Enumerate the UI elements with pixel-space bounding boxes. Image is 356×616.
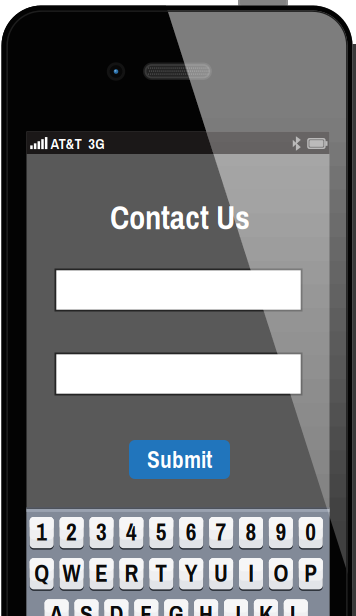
staticText: T [155, 557, 167, 589]
button[interactable]: T [149, 558, 173, 591]
staticText: I [248, 557, 253, 589]
button[interactable]: Q [30, 558, 54, 591]
button[interactable]: U [209, 558, 233, 591]
staticText: P [304, 557, 317, 589]
staticText: U [214, 557, 228, 589]
staticText: Q [34, 557, 49, 589]
staticText: G [169, 599, 184, 616]
button[interactable]: 8 [239, 517, 263, 550]
button[interactable]: I [239, 558, 263, 591]
button[interactable]: Submit [129, 440, 230, 479]
button[interactable]: 9 [269, 517, 293, 550]
staticText: O [273, 557, 288, 589]
button[interactable]: 7 [209, 517, 233, 550]
button[interactable]: 6 [179, 517, 203, 550]
staticText: K [259, 599, 273, 616]
staticText: R [124, 557, 138, 589]
staticText: 8 [245, 516, 256, 548]
staticText: 5 [156, 516, 167, 548]
staticText: Contact Us [110, 195, 250, 239]
staticText: 4 [126, 516, 137, 548]
staticText: S [80, 599, 93, 616]
button[interactable]: O [269, 558, 293, 591]
staticText: E [95, 557, 108, 589]
button[interactable]: W [60, 558, 84, 591]
button[interactable]: 4 [119, 517, 143, 550]
staticText: Y [185, 557, 198, 589]
button[interactable]: H [194, 599, 218, 616]
staticText: 9 [275, 516, 286, 548]
button[interactable]: D [104, 599, 128, 616]
staticText: 3 [96, 516, 107, 548]
button[interactable]: 0 [299, 517, 323, 550]
button[interactable]: K [254, 599, 278, 616]
button[interactable]: G [164, 599, 188, 616]
button[interactable]: A [45, 599, 69, 616]
button[interactable]: 1 [30, 517, 54, 550]
staticText: 6 [186, 516, 197, 548]
staticText: 0 [305, 516, 316, 548]
button[interactable]: R [119, 558, 143, 591]
staticText: J [230, 599, 241, 616]
button[interactable]: L [284, 599, 308, 616]
button[interactable]: Y [179, 558, 203, 591]
staticText: 2 [66, 516, 77, 548]
staticText: D [109, 599, 123, 616]
button[interactable]: P [299, 558, 323, 591]
staticText: Submit [147, 444, 212, 475]
staticText: W [63, 557, 81, 589]
staticText: H [199, 599, 213, 616]
button[interactable]: 2 [60, 517, 84, 550]
staticText: 1 [36, 516, 47, 548]
staticText: 3G [88, 134, 104, 153]
button[interactable]: E [89, 558, 113, 591]
staticText: L [290, 599, 302, 616]
button[interactable]: 5 [149, 517, 173, 550]
button[interactable]: S [74, 599, 98, 616]
staticText: AT&T [50, 134, 81, 153]
button[interactable]: F [134, 599, 158, 616]
staticText: 7 [216, 516, 227, 548]
button[interactable]: J [224, 599, 248, 616]
staticText: A [50, 599, 64, 616]
button[interactable]: 3 [89, 517, 113, 550]
staticText: F [140, 599, 152, 616]
